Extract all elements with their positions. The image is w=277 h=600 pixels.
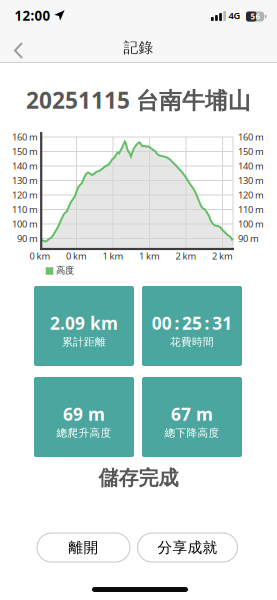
staticText: 高度: [56, 265, 74, 276]
button[interactable]: 離開: [37, 533, 130, 562]
staticText: 130 m: [12, 174, 38, 187]
staticText: 00: [152, 311, 172, 334]
staticText: 1 km: [139, 250, 160, 262]
staticText: 90 m: [17, 232, 38, 245]
staticText: 20251115 台南牛埔山: [26, 85, 251, 115]
staticText: 150 m: [12, 145, 38, 158]
staticText: 160 m: [12, 131, 38, 143]
staticText: 2 km: [212, 250, 233, 262]
staticText: 花費時間: [170, 335, 214, 349]
staticText: 總爬升高度: [56, 426, 111, 440]
staticText: 110 m: [238, 203, 264, 216]
staticText: 離開: [68, 538, 98, 556]
staticText: 2 km: [175, 250, 196, 262]
staticText: 56: [251, 11, 261, 22]
staticText: 總下降高度: [164, 426, 219, 440]
button[interactable]: Back: [6, 37, 30, 63]
button[interactable]: 分享成就: [137, 533, 237, 562]
staticText: 67 m: [171, 402, 213, 425]
staticText: 25: [182, 311, 202, 334]
staticText: 160 m: [238, 131, 264, 143]
staticText: 0 km: [29, 250, 50, 262]
staticText: 2.09 km: [50, 311, 118, 334]
staticText: 130 m: [238, 174, 264, 187]
staticText: 4G: [228, 9, 240, 22]
staticText: 1 km: [102, 250, 123, 262]
staticText: :: [205, 311, 210, 334]
staticText: 100 m: [238, 218, 264, 230]
staticText: 110 m: [12, 203, 38, 216]
staticText: 31: [212, 311, 232, 334]
staticText: 120 m: [12, 189, 38, 201]
staticText: 累計距離: [62, 335, 106, 349]
staticText: 儲存完成: [98, 466, 178, 490]
staticText: 150 m: [238, 145, 264, 158]
staticText: 分享成就: [157, 538, 217, 556]
staticText: 0 km: [66, 250, 87, 262]
staticText: 69 m: [63, 402, 105, 425]
staticText: 90 m: [238, 232, 259, 245]
staticText: 120 m: [238, 189, 264, 201]
staticText: 140 m: [238, 160, 264, 172]
staticText: 140 m: [12, 160, 38, 172]
staticText: 記錄: [123, 38, 153, 56]
staticText: :: [174, 311, 179, 334]
staticText: 12:00: [14, 7, 50, 24]
staticText: 100 m: [12, 218, 38, 230]
